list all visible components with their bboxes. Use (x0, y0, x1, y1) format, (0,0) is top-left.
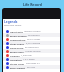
staticText: 68.4 kg (27, 66, 35, 69)
other: Calories (6, 54, 9, 57)
staticText: Legends (4, 20, 18, 24)
button[interactable]: Temperature (3, 37, 60, 41)
staticText: low index 24 (26, 62, 40, 65)
button[interactable]: Heart Rate (3, 29, 60, 33)
button[interactable]: Body Weight (3, 65, 60, 69)
button[interactable]: Blood Press (3, 49, 60, 53)
staticText: 98 percent (28, 34, 40, 37)
other: Heart Rate (6, 30, 9, 33)
other: Blood Oxygen (6, 34, 9, 37)
staticText: Blood Press (10, 50, 24, 53)
staticText: Sleep Score (10, 46, 24, 49)
button[interactable]: Stress Level (3, 61, 60, 65)
staticText: Blood Oxygen (10, 34, 27, 37)
staticText: Stress Level (10, 62, 25, 65)
other: Hydration (6, 58, 9, 61)
button[interactable]: Calories (3, 53, 60, 57)
button[interactable]: Sleep Score (3, 45, 60, 49)
staticText: resting 72 bpm (24, 30, 41, 33)
staticText: 8,421 walked (26, 42, 41, 45)
staticText: Temperature (10, 38, 26, 41)
staticText: 1.8 L water (23, 58, 35, 61)
other: Temperature (6, 38, 9, 41)
other: Stress Level (6, 62, 9, 65)
button[interactable]: Steps Today (3, 41, 60, 45)
staticText: Reference values (4, 24, 22, 27)
staticText: Steps Today (10, 42, 25, 45)
other: Sleep Score (6, 46, 9, 49)
other: Body Weight (6, 66, 9, 69)
other: Steps Today (6, 42, 9, 45)
staticText: 1,840 kcal (21, 54, 32, 57)
staticText: Hydration (10, 58, 22, 61)
button[interactable]: Blood Oxygen (3, 33, 60, 37)
button[interactable]: App bar (2, 8, 61, 19)
button[interactable]: Hydration (3, 57, 60, 61)
staticText: Life Record (23, 2, 42, 7)
staticText: Heart Rate (10, 30, 23, 33)
staticText: 120/80 mmHg (25, 50, 41, 53)
staticText: 82 good rest (25, 46, 39, 49)
staticText: Body Weight (10, 66, 26, 69)
other: Blood Press (6, 50, 9, 53)
staticText: 36.8 C today (27, 38, 41, 41)
staticText: Calories (10, 54, 20, 57)
